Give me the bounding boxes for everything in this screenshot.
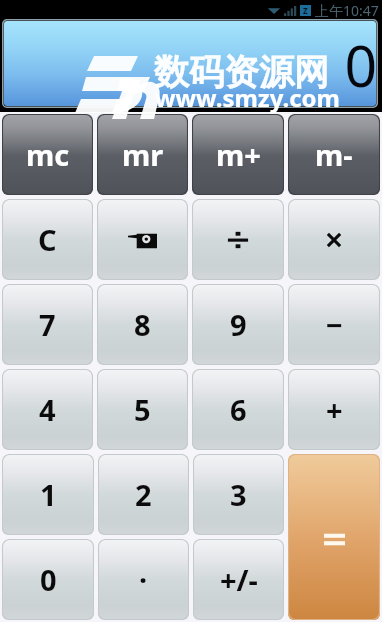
button[interactable]: +/- [193,539,284,620]
staticText: 3 [230,475,247,514]
button[interactable]: m+ [192,114,284,195]
staticText: 上午10:47 [315,1,379,20]
staticText: 0 [344,26,376,104]
button[interactable]: 2 [98,454,189,535]
button[interactable]: · [98,539,189,620]
staticText: 8 [134,305,151,344]
staticText: +/- [220,560,258,599]
staticText: 数码资源网 [154,50,329,94]
staticText: Z [303,5,308,16]
button[interactable]: Delete [97,199,188,280]
button[interactable]: + [288,369,380,450]
staticText: 0 [40,560,57,599]
button[interactable]: mc [2,114,93,195]
staticText: 4 [39,390,56,429]
button[interactable] [192,199,284,280]
button[interactable]: m- [288,114,380,195]
staticText: www.smzy.com [155,81,340,114]
staticText: − [326,305,343,344]
button[interactable] [288,199,380,280]
button[interactable]: 7 [2,284,93,365]
button[interactable] [288,454,380,620]
button[interactable]: 1 [2,454,94,535]
staticText: m- [315,135,353,174]
staticText: C [38,220,57,259]
staticText: 5 [134,390,151,429]
button[interactable]: mr [97,114,188,195]
staticText: 6 [230,390,247,429]
staticText: mc [26,135,70,174]
button[interactable]: 4 [2,369,93,450]
staticText: mr [122,135,164,174]
other: Delete [128,230,157,249]
button[interactable]: 3 [193,454,284,535]
button[interactable]: 0 [2,539,94,620]
button[interactable]: 9 [192,284,284,365]
staticText: 7 [39,305,56,344]
button[interactable]: 8 [97,284,188,365]
button[interactable]: C [2,199,93,280]
button[interactable]: 5 [97,369,188,450]
staticText: 9 [230,305,247,344]
staticText: · [139,560,148,599]
button[interactable]: − [288,284,380,365]
staticText: 2 [135,475,152,514]
button[interactable]: 6 [192,369,284,450]
staticText: 1 [40,475,57,514]
staticText: m+ [216,135,261,174]
staticText: + [326,390,343,429]
